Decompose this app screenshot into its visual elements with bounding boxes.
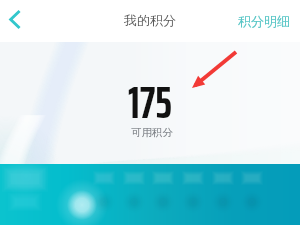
staticText: 我的积分	[124, 12, 176, 28]
button[interactable]: 积分明细	[238, 0, 300, 42]
staticText: 175	[128, 68, 172, 137]
staticText: 积分明细	[238, 13, 290, 29]
staticText: 可用积分	[131, 126, 173, 139]
button[interactable]: Back	[0, 0, 30, 42]
